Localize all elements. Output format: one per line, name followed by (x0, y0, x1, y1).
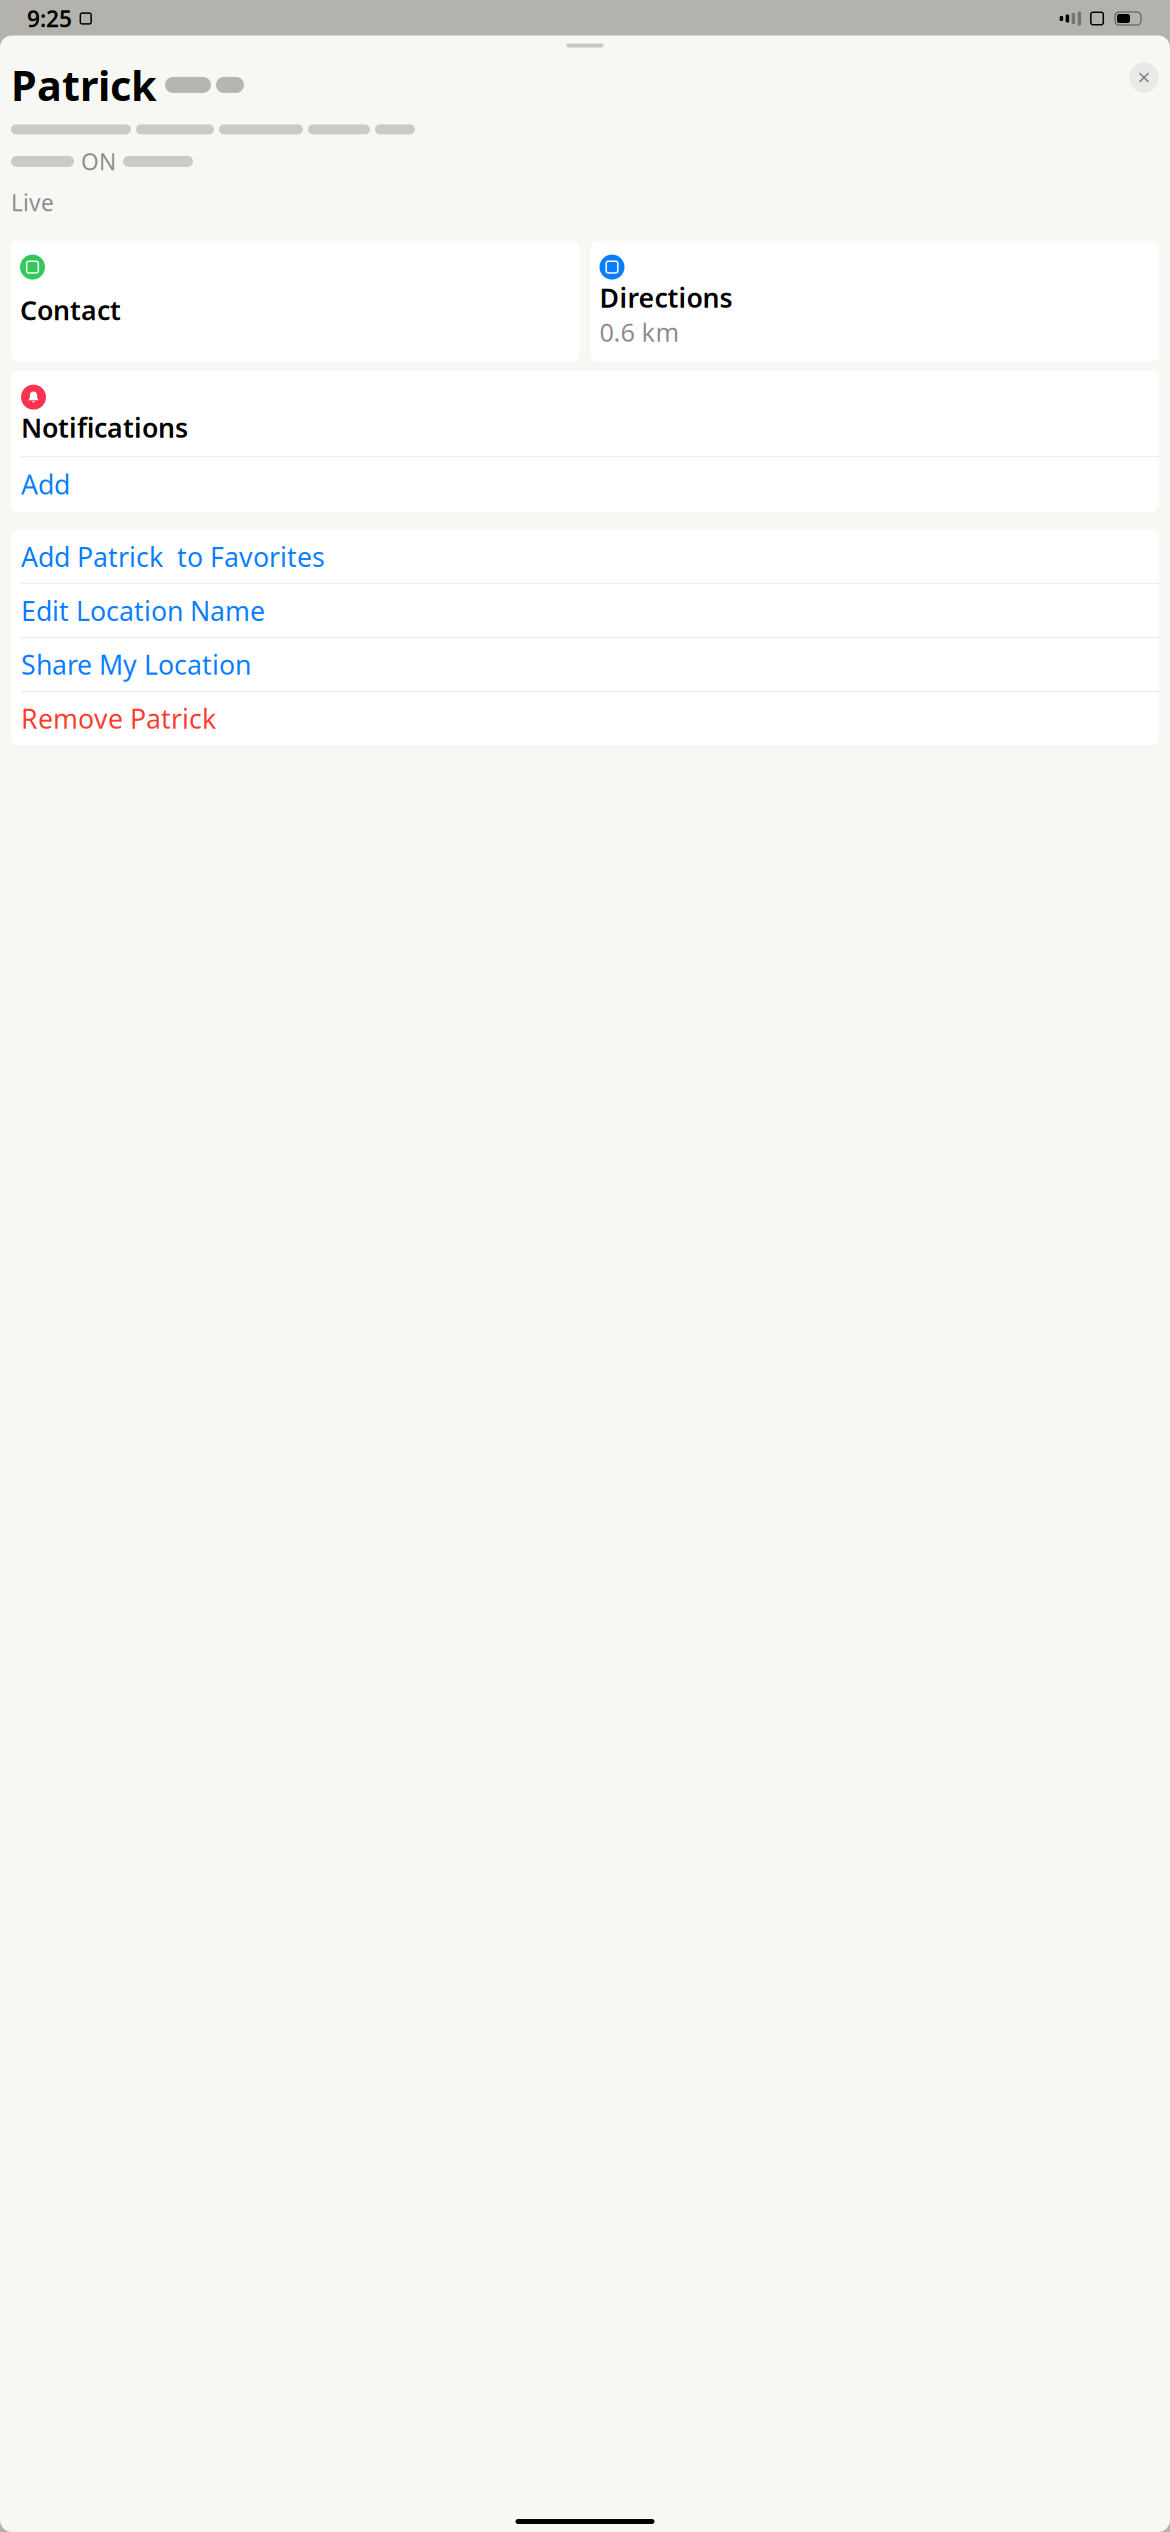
button[interactable]: Add (11, 467, 1159, 502)
staticText: Add (21, 467, 70, 502)
staticText: Share My Location (21, 647, 251, 682)
staticText: Edit Location Name (21, 593, 265, 628)
button[interactable]: Share My Location (11, 647, 1159, 682)
staticText: 9:25 (27, 3, 72, 33)
button[interactable]: Close (1129, 62, 1159, 92)
staticText: Directions (599, 280, 732, 315)
button[interactable]: Directions (590, 241, 1159, 362)
staticText: Remove Patrick (21, 701, 216, 736)
staticText: Add Patrick to Favorites (21, 539, 325, 574)
staticText: ON (81, 146, 116, 176)
button[interactable]: Contact (11, 241, 579, 362)
staticText: 0.6 km (599, 315, 679, 349)
button[interactable]: Remove Patrick (11, 701, 1159, 736)
staticText: Live (11, 187, 54, 218)
staticText: Patrick (11, 57, 157, 112)
button[interactable]: Notifications (11, 371, 1159, 456)
staticText: Notifications (21, 410, 188, 445)
button[interactable]: Edit Location Name (11, 593, 1159, 628)
staticText: Contact (20, 292, 121, 328)
button[interactable]: Add Patrick to Favorites (11, 539, 1159, 574)
